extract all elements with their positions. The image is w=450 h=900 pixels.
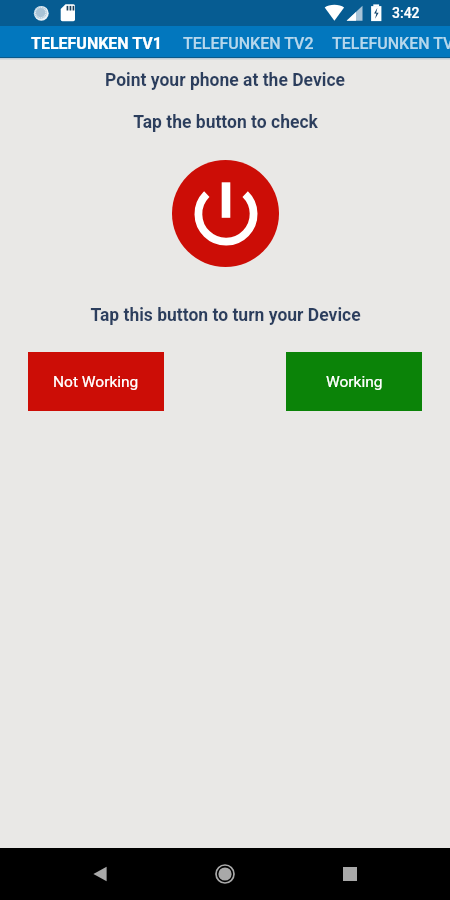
button[interactable]: Recent apps bbox=[318, 848, 382, 900]
button[interactable]: TELEFUNKEN TV2 bbox=[172, 27, 324, 58]
button[interactable]: TELEFUNKEN TV3 bbox=[324, 27, 450, 58]
button[interactable]: Power bbox=[172, 160, 279, 267]
staticText: TELEFUNKEN TV3 bbox=[332, 34, 450, 53]
staticText: Working bbox=[326, 373, 383, 391]
staticText: Tap this button to turn your Device bbox=[90, 305, 361, 326]
button[interactable]: Back bbox=[68, 848, 132, 900]
staticText: Not Working bbox=[53, 373, 139, 391]
button[interactable]: Working bbox=[286, 352, 422, 411]
button[interactable]: Home bbox=[193, 848, 257, 900]
staticText: TELEFUNKEN TV1 bbox=[31, 34, 162, 53]
staticText: 3:42 bbox=[392, 5, 420, 21]
staticText: Tap the button to check bbox=[133, 112, 318, 133]
staticText: TELEFUNKEN TV2 bbox=[183, 34, 314, 53]
staticText: Point your phone at the Device bbox=[105, 70, 345, 91]
button[interactable]: Not Working bbox=[28, 352, 164, 411]
button[interactable]: TELEFUNKEN TV1 bbox=[20, 27, 172, 58]
